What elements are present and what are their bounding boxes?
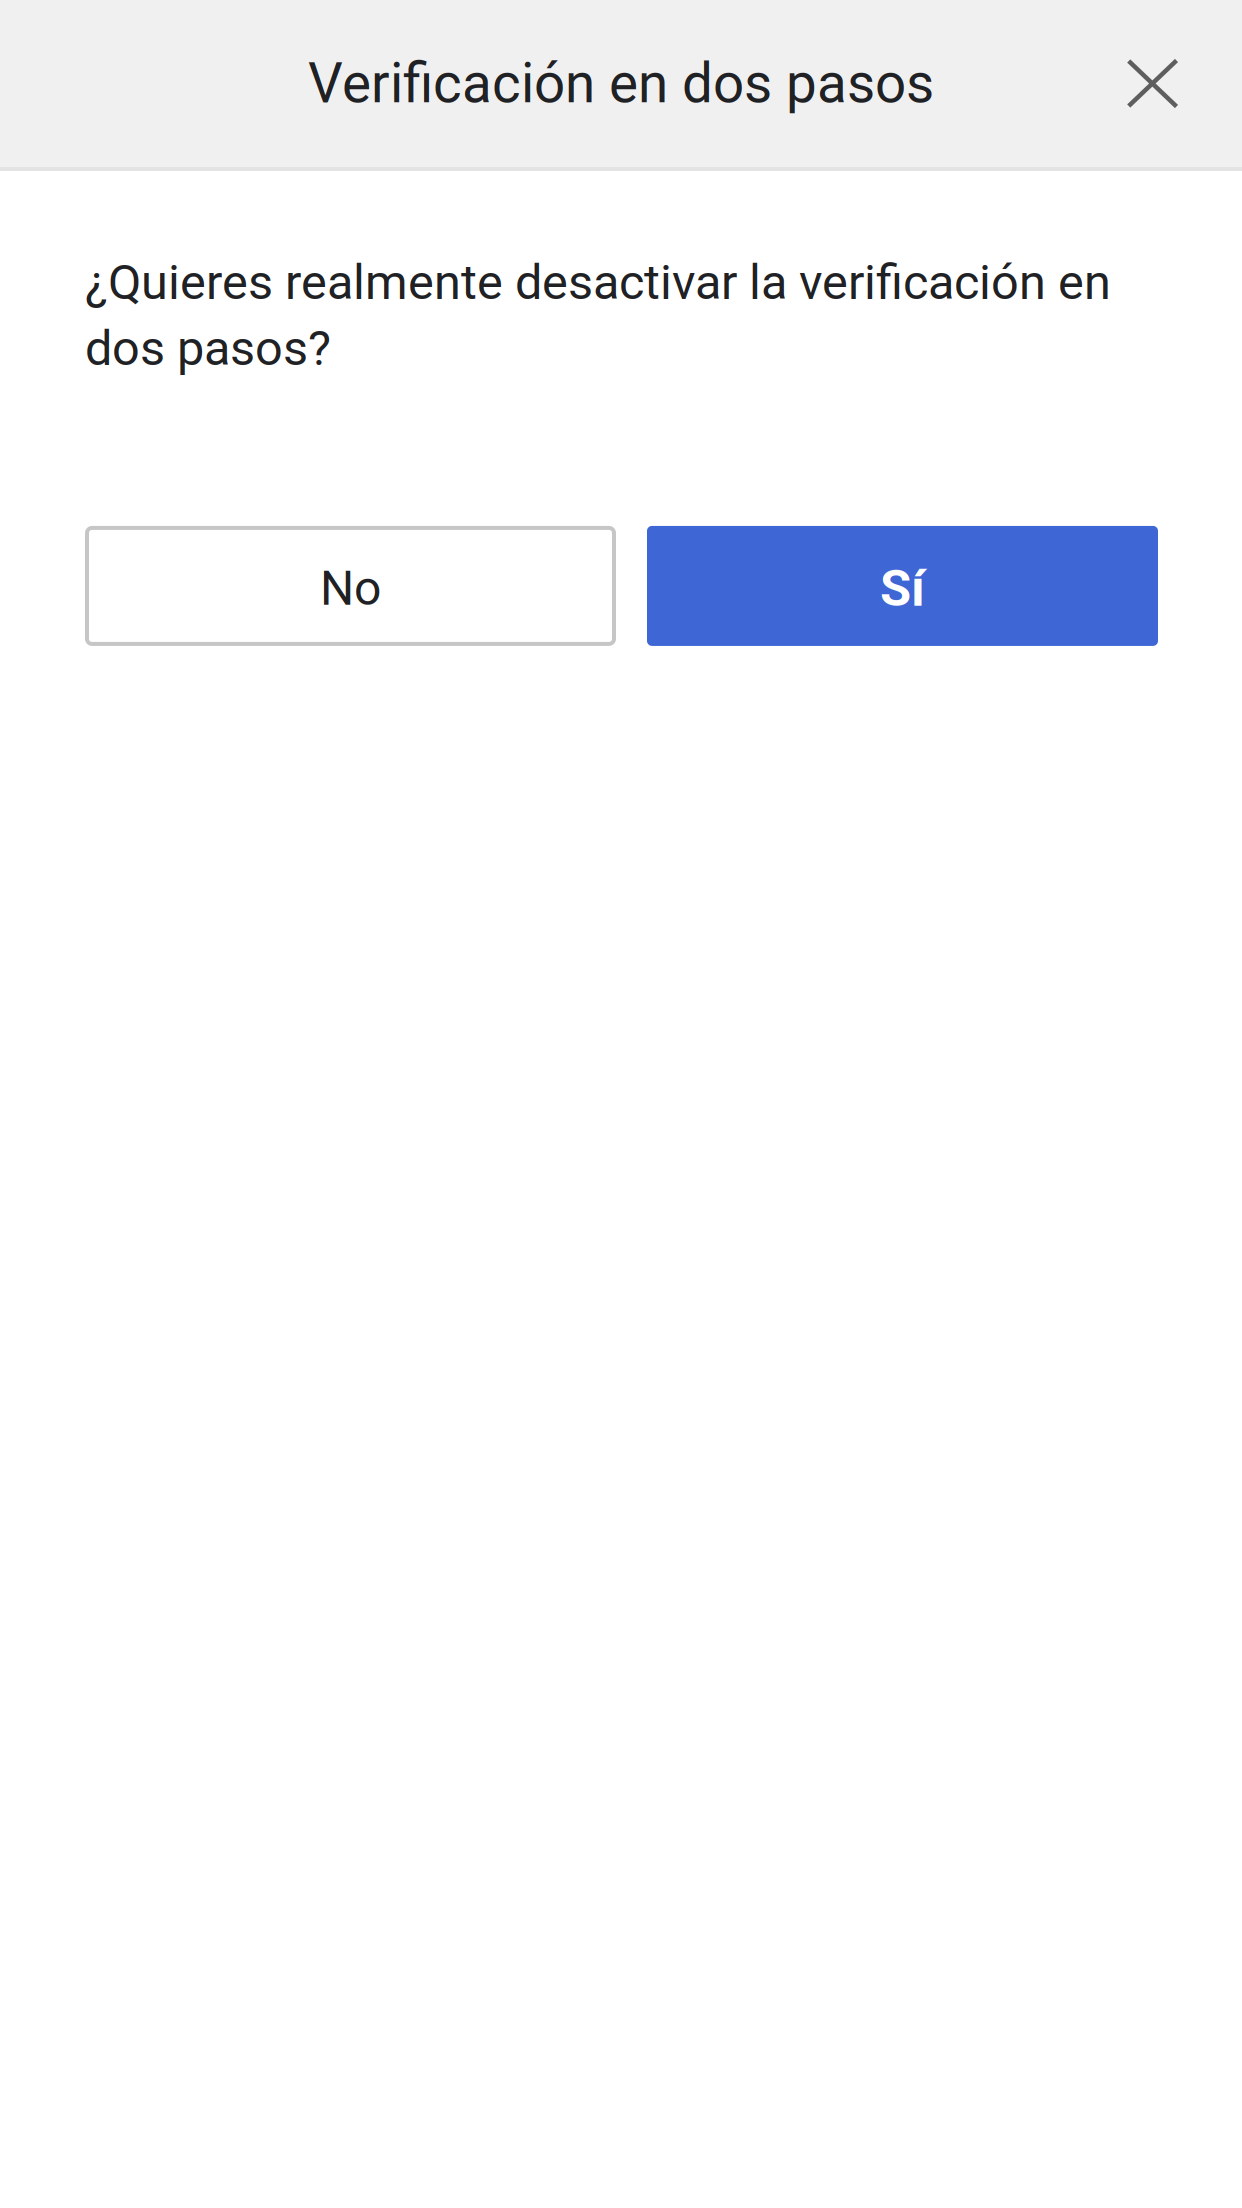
staticText: ¿Quieres realmente desactivar la verific… bbox=[85, 254, 1111, 377]
button[interactable]: Cerrar bbox=[1088, 18, 1218, 148]
staticText: No bbox=[320, 560, 381, 616]
staticText: Sí bbox=[880, 559, 925, 618]
button[interactable]: Sí bbox=[647, 526, 1158, 646]
button[interactable]: No bbox=[85, 526, 616, 646]
staticText: Verificación en dos pasos bbox=[308, 51, 934, 116]
